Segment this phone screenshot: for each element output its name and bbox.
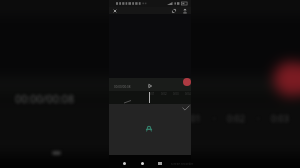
staticText: 0:02	[227, 112, 245, 124]
button[interactable]: Crop	[171, 8, 177, 14]
staticText: screen recorder	[171, 162, 194, 166]
button[interactable]: Home	[141, 162, 144, 165]
button[interactable]: Back	[123, 162, 126, 165]
staticText: 00:00/00:08	[15, 91, 75, 106]
button[interactable]: Confirm	[182, 105, 190, 111]
staticText: 0:01	[149, 92, 155, 96]
staticText: 0:03	[271, 112, 289, 124]
button[interactable]: Close	[112, 8, 118, 14]
staticText: 0:03	[173, 92, 179, 96]
button[interactable]: Export	[182, 8, 188, 14]
staticText: 0:04	[185, 92, 191, 96]
staticText: :01	[188, 112, 201, 124]
button[interactable]: Play	[147, 83, 153, 89]
staticText: 00:00/00:08	[114, 85, 131, 89]
staticText: 0:02	[161, 92, 167, 96]
button[interactable]: Record	[183, 78, 191, 86]
